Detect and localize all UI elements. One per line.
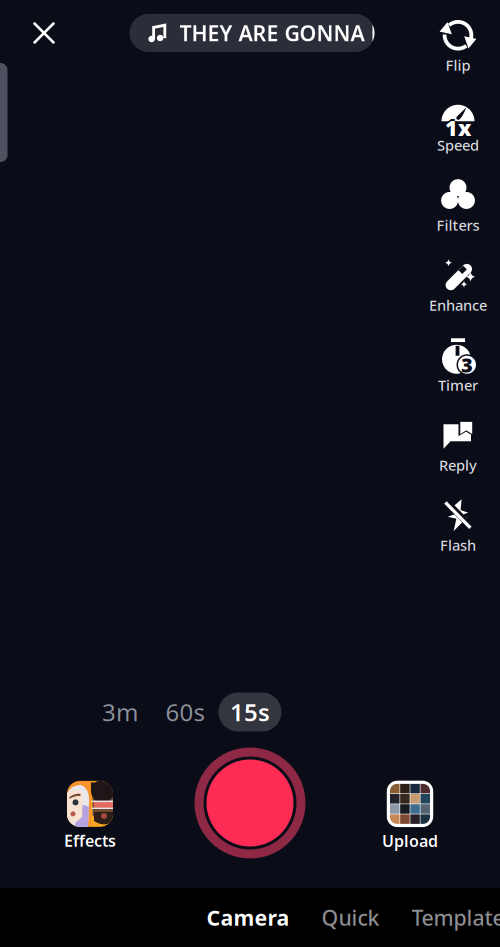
staticText: 1x [443,114,469,142]
button[interactable]: Record [195,748,305,858]
staticText: Quick [321,903,379,932]
staticText: Effects [64,830,116,851]
staticText: Filters [436,215,479,235]
button[interactable]: Enhance [416,256,500,316]
button[interactable]: Close [21,10,67,56]
staticText: Flash [440,535,476,555]
button[interactable]: Filters [416,176,500,236]
button[interactable]: Camera [190,888,305,947]
button[interactable]: Flip [416,16,500,76]
button[interactable]: Speed [416,96,500,156]
staticText: Reply [439,455,477,475]
staticText: Upload [382,830,438,851]
button[interactable]: Effects [40,781,140,851]
staticText: 3m [102,696,138,728]
staticText: 1x [447,114,473,142]
staticText: 3 [461,351,473,378]
button[interactable]: Templates [395,888,500,947]
staticText: 1x [445,112,471,140]
button[interactable]: Upload [360,781,460,851]
staticText: 60s [165,696,204,728]
staticText: Camera [206,903,289,932]
staticText: Speed [437,135,479,155]
staticText: 1x [445,114,471,142]
button[interactable]: Quick [305,888,395,947]
staticText: 15s [230,696,270,728]
staticText: Templates [411,903,500,932]
button[interactable]: 60s [153,692,216,731]
button[interactable]: Reply [416,416,500,476]
button[interactable]: 15s [218,692,281,731]
button[interactable]: 3m [88,692,151,731]
staticText: THEY ARE GONNA KNOW [179,19,438,47]
staticText: Flip [445,55,470,75]
staticText: Enhance [429,295,487,315]
button[interactable]: THEY ARE GONNA KNOW [129,14,374,52]
staticText: Timer [438,375,478,395]
button[interactable]: Timer [416,336,500,396]
button[interactable]: Flash [416,496,500,556]
staticText: 1x [445,116,471,144]
